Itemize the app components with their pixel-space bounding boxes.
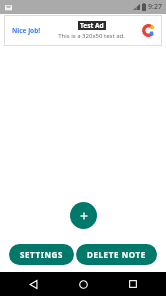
staticText: This is a 320x50 test ad. <box>58 32 125 40</box>
button[interactable]: DELETE NOTE <box>76 244 157 265</box>
button[interactable]: Nice job! <box>4 15 162 46</box>
button[interactable]: Back <box>16 272 50 296</box>
button[interactable]: Recent apps <box>116 272 150 296</box>
button[interactable]: Home <box>66 272 100 296</box>
staticText: SETTINGS <box>20 249 63 260</box>
button[interactable]: Add note <box>70 202 97 229</box>
staticText: DELETE NOTE <box>87 249 146 260</box>
button[interactable]: SETTINGS <box>9 244 74 265</box>
staticText: Test Ad <box>80 21 104 30</box>
staticText: Nice job! <box>12 26 41 35</box>
staticText: 9:27 <box>148 2 162 12</box>
